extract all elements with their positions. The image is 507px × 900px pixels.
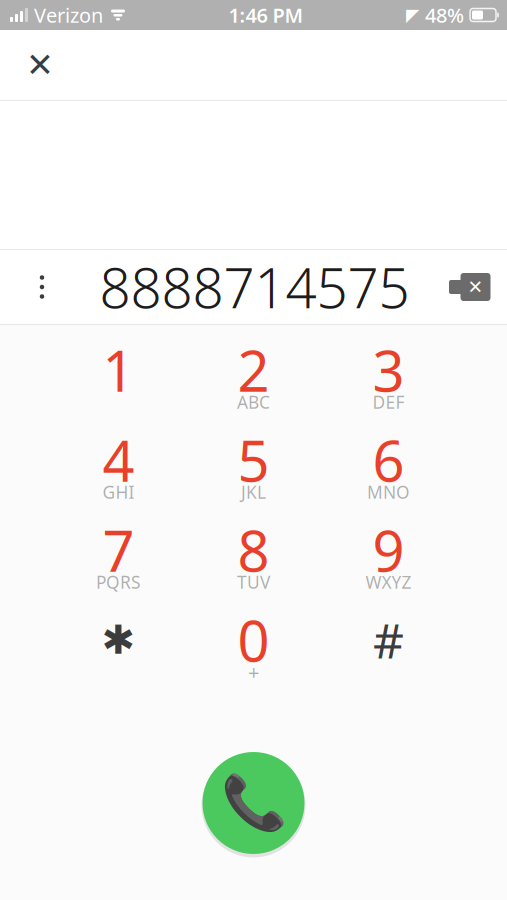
staticText: ABC bbox=[237, 390, 270, 413]
staticText: DEF bbox=[372, 390, 404, 413]
button[interactable]: 3 bbox=[321, 333, 456, 423]
staticText: ◤ bbox=[406, 5, 419, 25]
button[interactable]: 1 bbox=[51, 333, 186, 423]
button[interactable]: 5 bbox=[186, 423, 321, 513]
staticText: Verizon bbox=[34, 2, 103, 28]
staticText: 2 bbox=[237, 333, 269, 407]
staticText: 3 bbox=[372, 333, 404, 407]
staticText: JKL bbox=[241, 480, 266, 503]
button[interactable]: 7 bbox=[51, 513, 186, 603]
staticText: TUV bbox=[237, 570, 270, 593]
staticText: ✕ bbox=[467, 276, 483, 298]
button[interactable]: 0 bbox=[186, 603, 321, 693]
staticText: ✕ bbox=[26, 46, 54, 84]
staticText: ✱ bbox=[101, 617, 135, 663]
staticText: GHI bbox=[102, 480, 134, 503]
button[interactable]: Backspace bbox=[437, 250, 505, 324]
staticText: 9 bbox=[372, 513, 404, 587]
staticText: 8 bbox=[237, 513, 269, 587]
staticText: # bbox=[373, 608, 404, 672]
button[interactable]: Close bbox=[8, 30, 72, 100]
button[interactable]: ✱ bbox=[51, 603, 186, 693]
button[interactable]: 6 bbox=[321, 423, 456, 513]
staticText: WXYZ bbox=[365, 570, 411, 593]
button[interactable]: 9 bbox=[321, 513, 456, 603]
staticText: 4 bbox=[102, 423, 134, 497]
button[interactable]: 2 bbox=[186, 333, 321, 423]
staticText: 48% bbox=[425, 2, 464, 28]
staticText: 7 bbox=[102, 513, 134, 587]
staticText: 1 bbox=[102, 333, 134, 407]
button[interactable]: # bbox=[321, 603, 456, 693]
staticText: + bbox=[248, 659, 259, 685]
button[interactable]: 8 bbox=[186, 513, 321, 603]
button[interactable]: More options bbox=[12, 250, 72, 324]
button[interactable]: Call bbox=[194, 744, 312, 862]
staticText: 📞 bbox=[220, 772, 286, 833]
staticText: 6 bbox=[372, 423, 404, 497]
button[interactable]: 4 bbox=[51, 423, 186, 513]
staticText: 8888714575 bbox=[99, 251, 409, 323]
staticText bbox=[116, 390, 121, 413]
staticText: 0 bbox=[237, 603, 269, 677]
staticText: PQRS bbox=[96, 570, 141, 593]
staticText: 1:46 PM bbox=[228, 2, 303, 28]
staticText: MNO bbox=[367, 480, 410, 503]
staticText: 5 bbox=[237, 423, 269, 497]
